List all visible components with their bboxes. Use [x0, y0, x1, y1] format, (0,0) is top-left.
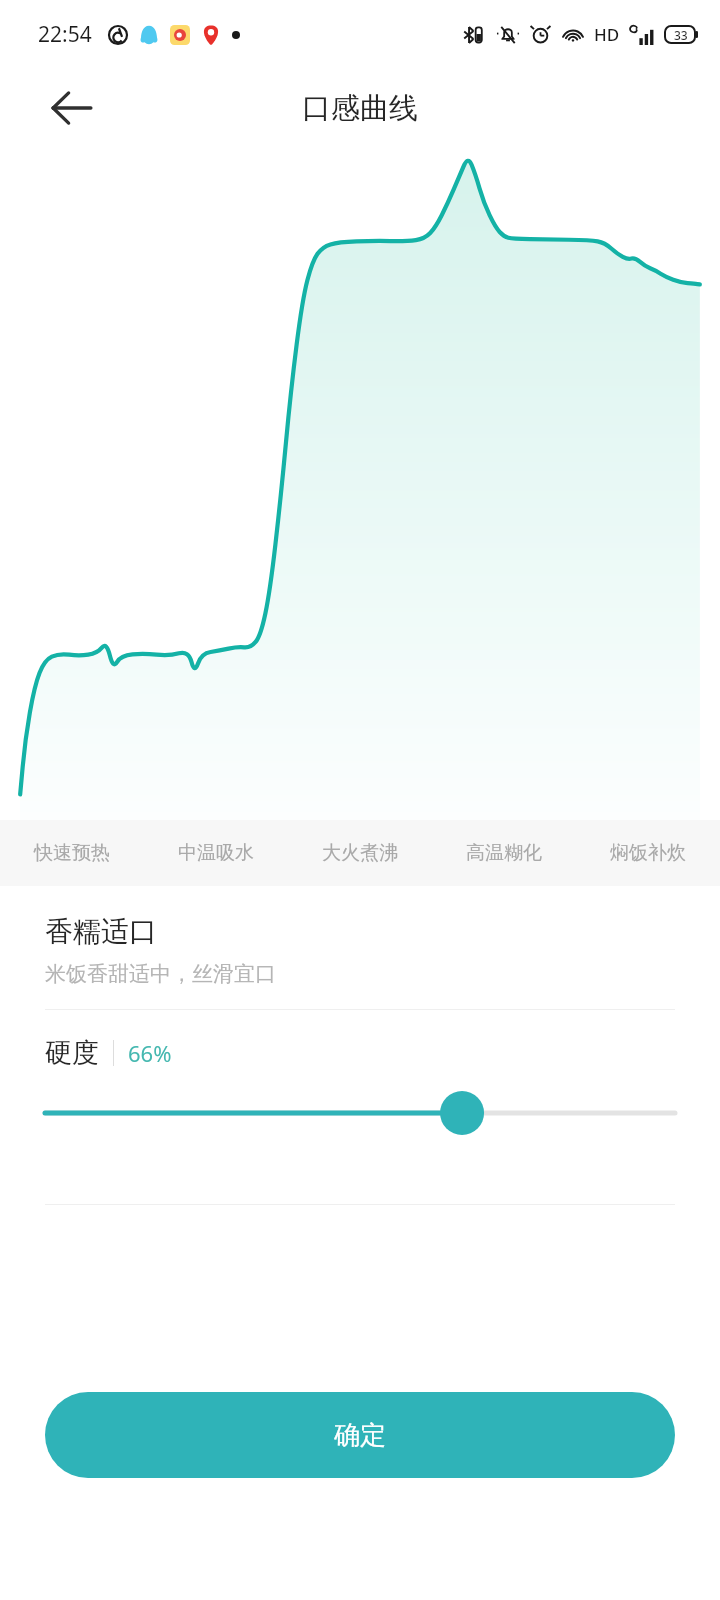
staticText: 33: [674, 27, 688, 43]
staticText: HD: [594, 23, 620, 46]
button[interactable]: Back: [34, 70, 110, 146]
staticText: 高温糊化: [466, 841, 542, 865]
button[interactable]: 大火煮沸: [288, 820, 432, 886]
button[interactable]: 高温糊化: [432, 820, 576, 886]
button[interactable]: 焖饭补炊: [576, 820, 720, 886]
staticText: 66%: [128, 1038, 172, 1068]
staticText: 快速预热: [34, 841, 110, 865]
staticText: 22:54: [38, 20, 92, 49]
staticText: 硬度: [45, 1036, 99, 1070]
button[interactable]: 确定: [45, 1392, 675, 1478]
staticText: 大火煮沸: [322, 841, 398, 865]
staticText: 香糯适口: [45, 914, 157, 949]
staticText: 焖饭补炊: [610, 841, 686, 865]
button[interactable]: 中温吸水: [144, 820, 288, 886]
staticText: 口感曲线: [302, 90, 418, 127]
staticText: 中温吸水: [178, 841, 254, 865]
button[interactable]: 快速预热: [0, 820, 144, 886]
staticText: 确定: [334, 1419, 386, 1452]
staticText: 米饭香甜适中，丝滑宜口: [45, 961, 276, 987]
button[interactable]: [45, 1070, 675, 1156]
